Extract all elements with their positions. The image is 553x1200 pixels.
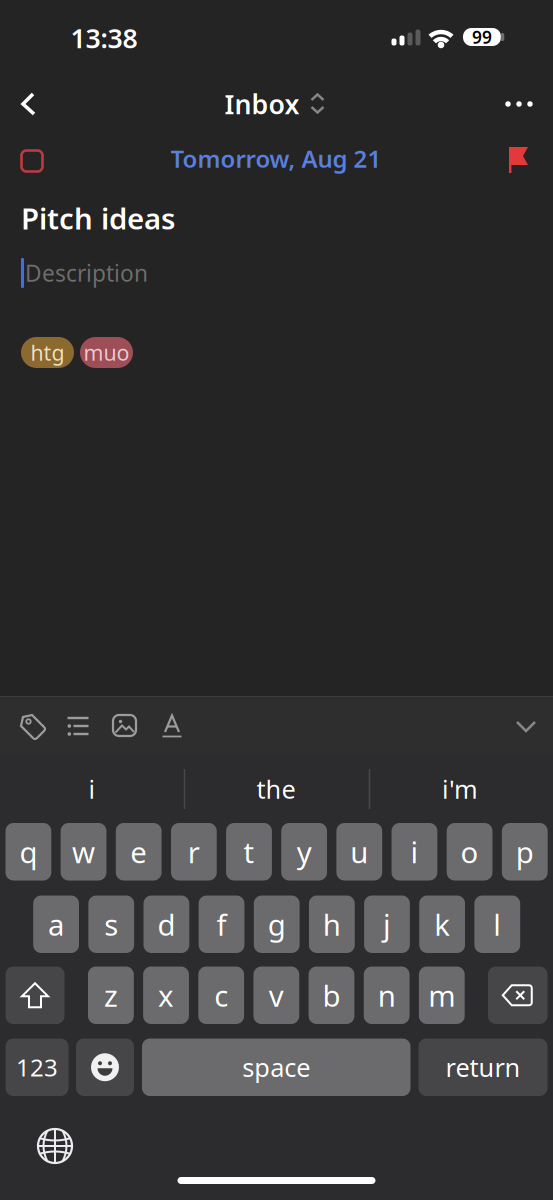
button[interactable]: v — [253, 966, 299, 1024]
button[interactable]: i — [7, 765, 177, 813]
staticText: c — [214, 976, 228, 1015]
staticText: 123 — [16, 1051, 58, 1083]
button[interactable]: Add label — [20, 712, 48, 740]
button[interactable]: q — [5, 823, 51, 880]
button[interactable]: p — [502, 823, 548, 880]
button[interactable]: e — [116, 823, 162, 880]
button[interactable]: Attach image — [113, 715, 137, 737]
staticText: u — [350, 832, 368, 871]
staticText: z — [104, 976, 118, 1015]
button[interactable]: muo — [80, 337, 133, 368]
button[interactable]: Delete — [488, 966, 547, 1024]
staticText: m — [428, 976, 455, 1015]
staticText: d — [157, 905, 175, 944]
button[interactable]: i'm — [375, 765, 545, 813]
button[interactable]: Formatting — [160, 714, 184, 738]
button[interactable]: c — [198, 966, 244, 1024]
button[interactable]: Set priority — [507, 146, 531, 174]
staticText: h — [323, 905, 341, 944]
button[interactable]: Inbox, change project — [224, 86, 327, 122]
staticText: i — [410, 832, 418, 871]
button[interactable]: Complete task — [21, 150, 42, 171]
staticText: p — [516, 832, 534, 871]
staticText: return — [445, 1050, 520, 1084]
staticText: e — [130, 832, 147, 871]
staticText: w — [72, 832, 95, 871]
button[interactable]: u — [336, 823, 382, 880]
button[interactable]: y — [281, 823, 327, 880]
staticText: b — [322, 976, 340, 1015]
staticText: y — [297, 832, 312, 871]
staticText: j — [383, 905, 391, 944]
button[interactable]: space — [142, 1038, 410, 1096]
button[interactable]: Add sub-task — [67, 716, 91, 736]
button[interactable]: More options — [503, 94, 535, 114]
staticText: t — [243, 832, 254, 871]
button[interactable]: z — [88, 966, 134, 1024]
staticText: f — [216, 905, 226, 944]
staticText: x — [158, 976, 174, 1015]
staticText: the — [256, 772, 295, 806]
button[interactable]: d — [143, 895, 189, 953]
button[interactable]: o — [447, 823, 492, 880]
button[interactable]: Emoji — [76, 1038, 134, 1096]
staticText: Tomorrow, Aug 21 — [170, 143, 381, 174]
staticText: o — [461, 832, 479, 871]
staticText: htg — [30, 338, 64, 367]
button[interactable]: the — [191, 765, 361, 813]
staticText: i'm — [442, 772, 478, 806]
button[interactable]: x — [143, 966, 189, 1024]
button[interactable]: return — [418, 1038, 547, 1096]
button[interactable]: Tomorrow, Aug 21 — [170, 143, 381, 174]
staticText: g — [268, 905, 286, 944]
staticText: muo — [83, 338, 129, 367]
staticText: l — [493, 905, 501, 944]
staticText: q — [19, 832, 37, 871]
button[interactable]: b — [309, 966, 354, 1024]
staticText: a — [48, 905, 64, 944]
button[interactable]: n — [364, 966, 410, 1024]
staticText: i — [88, 772, 95, 806]
staticText: k — [434, 905, 450, 944]
button[interactable]: w — [61, 823, 106, 880]
button[interactable]: s — [88, 895, 134, 953]
button[interactable]: Back — [6, 82, 50, 126]
button[interactable]: j — [364, 895, 410, 953]
staticText: Pitch ideas — [21, 198, 175, 237]
staticText: s — [104, 905, 118, 944]
button[interactable]: i — [392, 823, 437, 880]
staticText: 13:38 — [70, 20, 137, 56]
button[interactable]: Shift — [5, 966, 64, 1024]
button[interactable]: f — [199, 895, 244, 953]
staticText: 99 — [472, 25, 492, 48]
staticText: v — [269, 976, 284, 1015]
button[interactable]: m — [419, 966, 465, 1024]
button[interactable]: Dismiss keyboard — [516, 721, 536, 733]
button[interactable]: r — [171, 823, 217, 880]
staticText: space — [242, 1050, 310, 1084]
button[interactable]: Next keyboard — [36, 1127, 74, 1165]
staticText: Inbox — [224, 86, 299, 122]
staticText: r — [188, 832, 200, 871]
button[interactable]: htg — [21, 337, 74, 368]
button[interactable]: h — [309, 895, 355, 953]
button[interactable]: k — [419, 895, 465, 953]
staticText: n — [378, 976, 396, 1015]
button[interactable]: l — [474, 895, 520, 953]
button[interactable]: g — [254, 895, 300, 953]
staticText: Description — [25, 258, 148, 288]
button[interactable]: a — [33, 895, 79, 953]
button[interactable]: t — [226, 823, 272, 880]
button[interactable]: 123 — [5, 1038, 68, 1096]
